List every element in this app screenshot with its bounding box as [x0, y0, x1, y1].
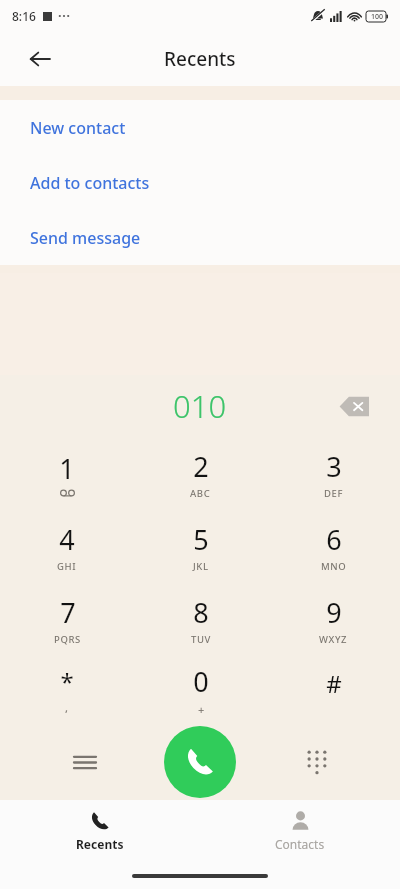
staticText: 8:16 — [12, 8, 36, 24]
button[interactable]: 4 — [0, 510, 134, 583]
staticText: Recents — [164, 46, 236, 72]
staticText: 5 — [193, 521, 209, 558]
button[interactable]: Contacts — [200, 800, 400, 862]
button[interactable]: 6 — [267, 510, 400, 583]
staticText: 0 — [193, 663, 209, 700]
button[interactable]: Send message — [0, 210, 400, 265]
staticText: PQRS — [54, 633, 81, 646]
button[interactable]: 3 — [267, 437, 400, 510]
button[interactable]: Add to contacts — [0, 155, 400, 210]
button[interactable]: Menu — [62, 739, 108, 785]
staticText: 7 — [60, 594, 76, 631]
staticText: , — [65, 700, 69, 715]
staticText: 4 — [59, 521, 75, 558]
staticText: 8 — [193, 594, 209, 631]
button[interactable]: 2 — [134, 437, 267, 510]
staticText: + — [198, 702, 205, 717]
staticText: ABC — [190, 487, 211, 500]
staticText: 2 — [193, 448, 209, 485]
staticText: # — [326, 667, 342, 700]
button[interactable]: 8 — [134, 583, 267, 656]
button[interactable]: 7 — [0, 583, 134, 656]
staticText: JKL — [193, 560, 209, 573]
staticText: Add to contacts — [30, 172, 150, 194]
staticText: 6 — [326, 521, 342, 558]
button[interactable]: # — [267, 656, 400, 724]
staticText: 3 — [326, 448, 342, 485]
staticText: Send message — [30, 227, 141, 249]
staticText: DEF — [324, 487, 344, 500]
staticText: 100 — [371, 12, 384, 22]
staticText: GHI — [57, 560, 77, 573]
button[interactable]: 5 — [134, 510, 267, 583]
button[interactable]: Back — [18, 37, 62, 81]
staticText: New contact — [30, 117, 126, 139]
staticText: MNO — [321, 560, 347, 573]
staticText: Contacts — [275, 836, 325, 852]
staticText: * — [60, 665, 74, 698]
button[interactable]: Call — [164, 726, 236, 798]
staticText: 9 — [326, 594, 342, 631]
button[interactable]: Dialpad — [294, 739, 340, 785]
button[interactable]: Recents — [0, 800, 200, 862]
button[interactable]: 9 — [267, 583, 400, 656]
staticText: 010 — [173, 385, 227, 427]
staticText: TUV — [191, 633, 211, 646]
button[interactable]: 1 — [0, 437, 134, 510]
button[interactable]: Backspace — [332, 384, 376, 428]
button[interactable]: 0 — [134, 656, 267, 724]
button[interactable]: New contact — [0, 100, 400, 155]
staticText: 1 — [59, 450, 75, 487]
staticText: Recents — [76, 836, 124, 852]
staticText: WXYZ — [319, 633, 348, 646]
button[interactable]: * — [0, 656, 134, 724]
